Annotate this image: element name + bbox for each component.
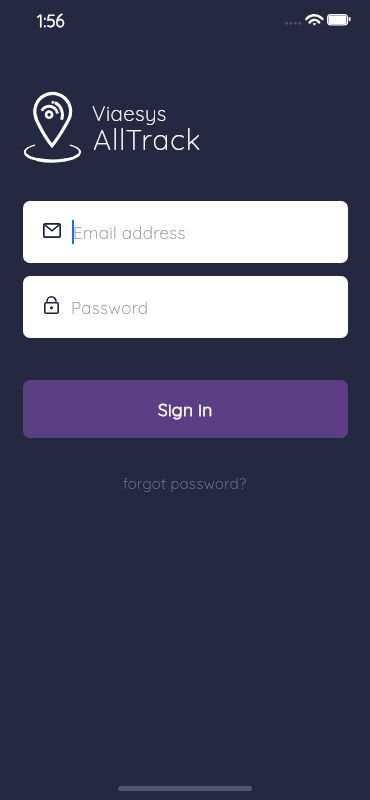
button[interactable]: Sign in bbox=[23, 380, 348, 438]
staticText: forgot password? bbox=[123, 474, 247, 493]
staticText: Viaesys bbox=[92, 100, 167, 126]
staticText: AllTrack bbox=[93, 122, 202, 157]
staticText: Password bbox=[71, 297, 149, 318]
button[interactable]: forgot password? bbox=[110, 470, 260, 496]
staticText: Email address bbox=[73, 222, 186, 243]
other: Battery bbox=[327, 13, 352, 26]
button[interactable]: Password bbox=[23, 276, 348, 338]
other: Wi-Fi bbox=[306, 15, 323, 27]
staticText: Sign in bbox=[158, 398, 213, 420]
button[interactable]: Email address bbox=[23, 201, 348, 263]
staticText: 1:56 bbox=[37, 10, 65, 31]
